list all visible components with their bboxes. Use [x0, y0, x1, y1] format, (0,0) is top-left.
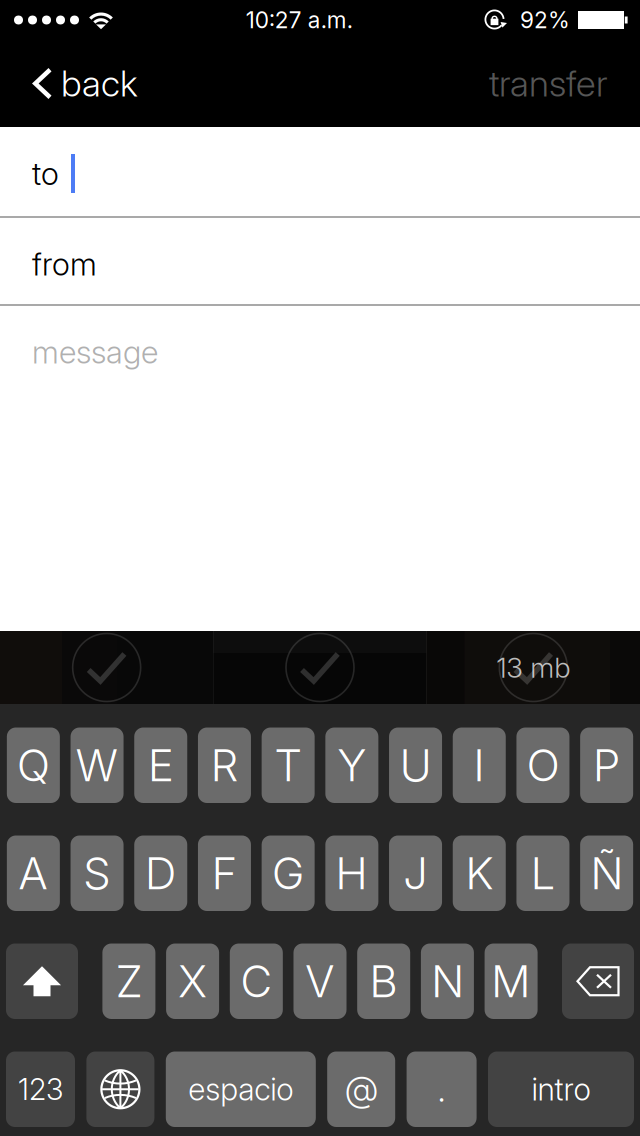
button[interactable]: J [389, 835, 442, 911]
staticText: R [210, 739, 238, 792]
staticText: Ñ [590, 847, 623, 900]
button[interactable]: intro [488, 1051, 634, 1127]
button[interactable]: Shift [6, 943, 78, 1019]
button[interactable]: H [325, 835, 378, 911]
button[interactable]: V [293, 943, 346, 1019]
button[interactable]: T [262, 727, 315, 803]
button[interactable]: Ñ [580, 835, 633, 911]
staticText: from [32, 245, 97, 283]
button[interactable]: K [453, 835, 506, 911]
button[interactable]: I [453, 727, 506, 803]
staticText: Y [337, 739, 366, 792]
button[interactable]: Q [7, 727, 60, 803]
staticText: U [400, 739, 432, 792]
staticText: W [76, 739, 119, 792]
button[interactable]: D [134, 835, 187, 911]
staticText: L [530, 847, 555, 900]
button[interactable]: S [71, 835, 124, 911]
button[interactable]: N [421, 943, 474, 1019]
button[interactable]: Z [102, 943, 155, 1019]
button[interactable]: L [516, 835, 569, 911]
staticText: X [178, 955, 207, 1008]
button[interactable]: @ [327, 1051, 395, 1127]
staticText: K [465, 847, 493, 900]
staticText: A [18, 847, 48, 900]
button[interactable]: from [0, 218, 640, 304]
staticText: D [145, 847, 177, 900]
staticText: back [61, 62, 138, 105]
button[interactable]: B [357, 943, 410, 1019]
staticText: G [272, 847, 305, 900]
button[interactable]: C [230, 943, 283, 1019]
button[interactable]: Selected photo [0, 631, 213, 704]
staticText: J [403, 847, 428, 900]
button[interactable]: back [0, 40, 156, 127]
staticText: I [473, 739, 485, 792]
staticText: message [32, 333, 158, 371]
staticText: H [335, 847, 368, 900]
staticText: C [240, 955, 272, 1008]
button[interactable]: espacio [166, 1051, 316, 1127]
button[interactable]: . [407, 1051, 477, 1127]
button[interactable]: to [0, 127, 640, 216]
staticText: Q [17, 739, 50, 792]
button[interactable]: P [580, 727, 633, 803]
button[interactable]: R [198, 727, 251, 803]
button[interactable]: message [0, 306, 640, 396]
button[interactable]: U [389, 727, 442, 803]
button[interactable]: Next keyboard [86, 1051, 154, 1127]
button[interactable]: O [516, 727, 569, 803]
button[interactable]: X [166, 943, 219, 1019]
staticText: 123 [18, 1071, 63, 1107]
staticText: B [369, 955, 398, 1008]
staticText: T [274, 739, 302, 792]
staticText: transfer [489, 62, 607, 105]
staticText: . [438, 1068, 446, 1110]
staticText: 92% [520, 6, 570, 34]
button[interactable]: transfer [473, 40, 623, 127]
button[interactable]: A [7, 835, 60, 911]
button[interactable]: Selected photo [213, 631, 427, 704]
button[interactable]: Delete [562, 943, 634, 1019]
staticText: to [32, 154, 59, 193]
button[interactable]: F [198, 835, 251, 911]
button[interactable]: M [485, 943, 538, 1019]
staticText: S [83, 847, 111, 900]
staticText: O [526, 739, 559, 792]
staticText: intro [531, 1071, 590, 1108]
staticText: 10:27 a.m. [246, 6, 353, 34]
staticText: Z [115, 955, 142, 1008]
staticText: V [305, 955, 335, 1008]
staticText: M [491, 955, 531, 1008]
button[interactable]: W [71, 727, 124, 803]
staticText: espacio [188, 1071, 293, 1108]
staticText: @ [345, 1068, 378, 1110]
button[interactable]: 123 [6, 1051, 75, 1127]
staticText: F [211, 847, 237, 900]
staticText: 13 mb [496, 651, 570, 684]
staticText: P [593, 739, 621, 792]
button[interactable]: G [262, 835, 315, 911]
button[interactable]: 13 mb [427, 631, 640, 704]
staticText: E [148, 739, 174, 792]
button[interactable]: Y [325, 727, 378, 803]
button[interactable]: E [134, 727, 187, 803]
staticText: N [431, 955, 464, 1008]
